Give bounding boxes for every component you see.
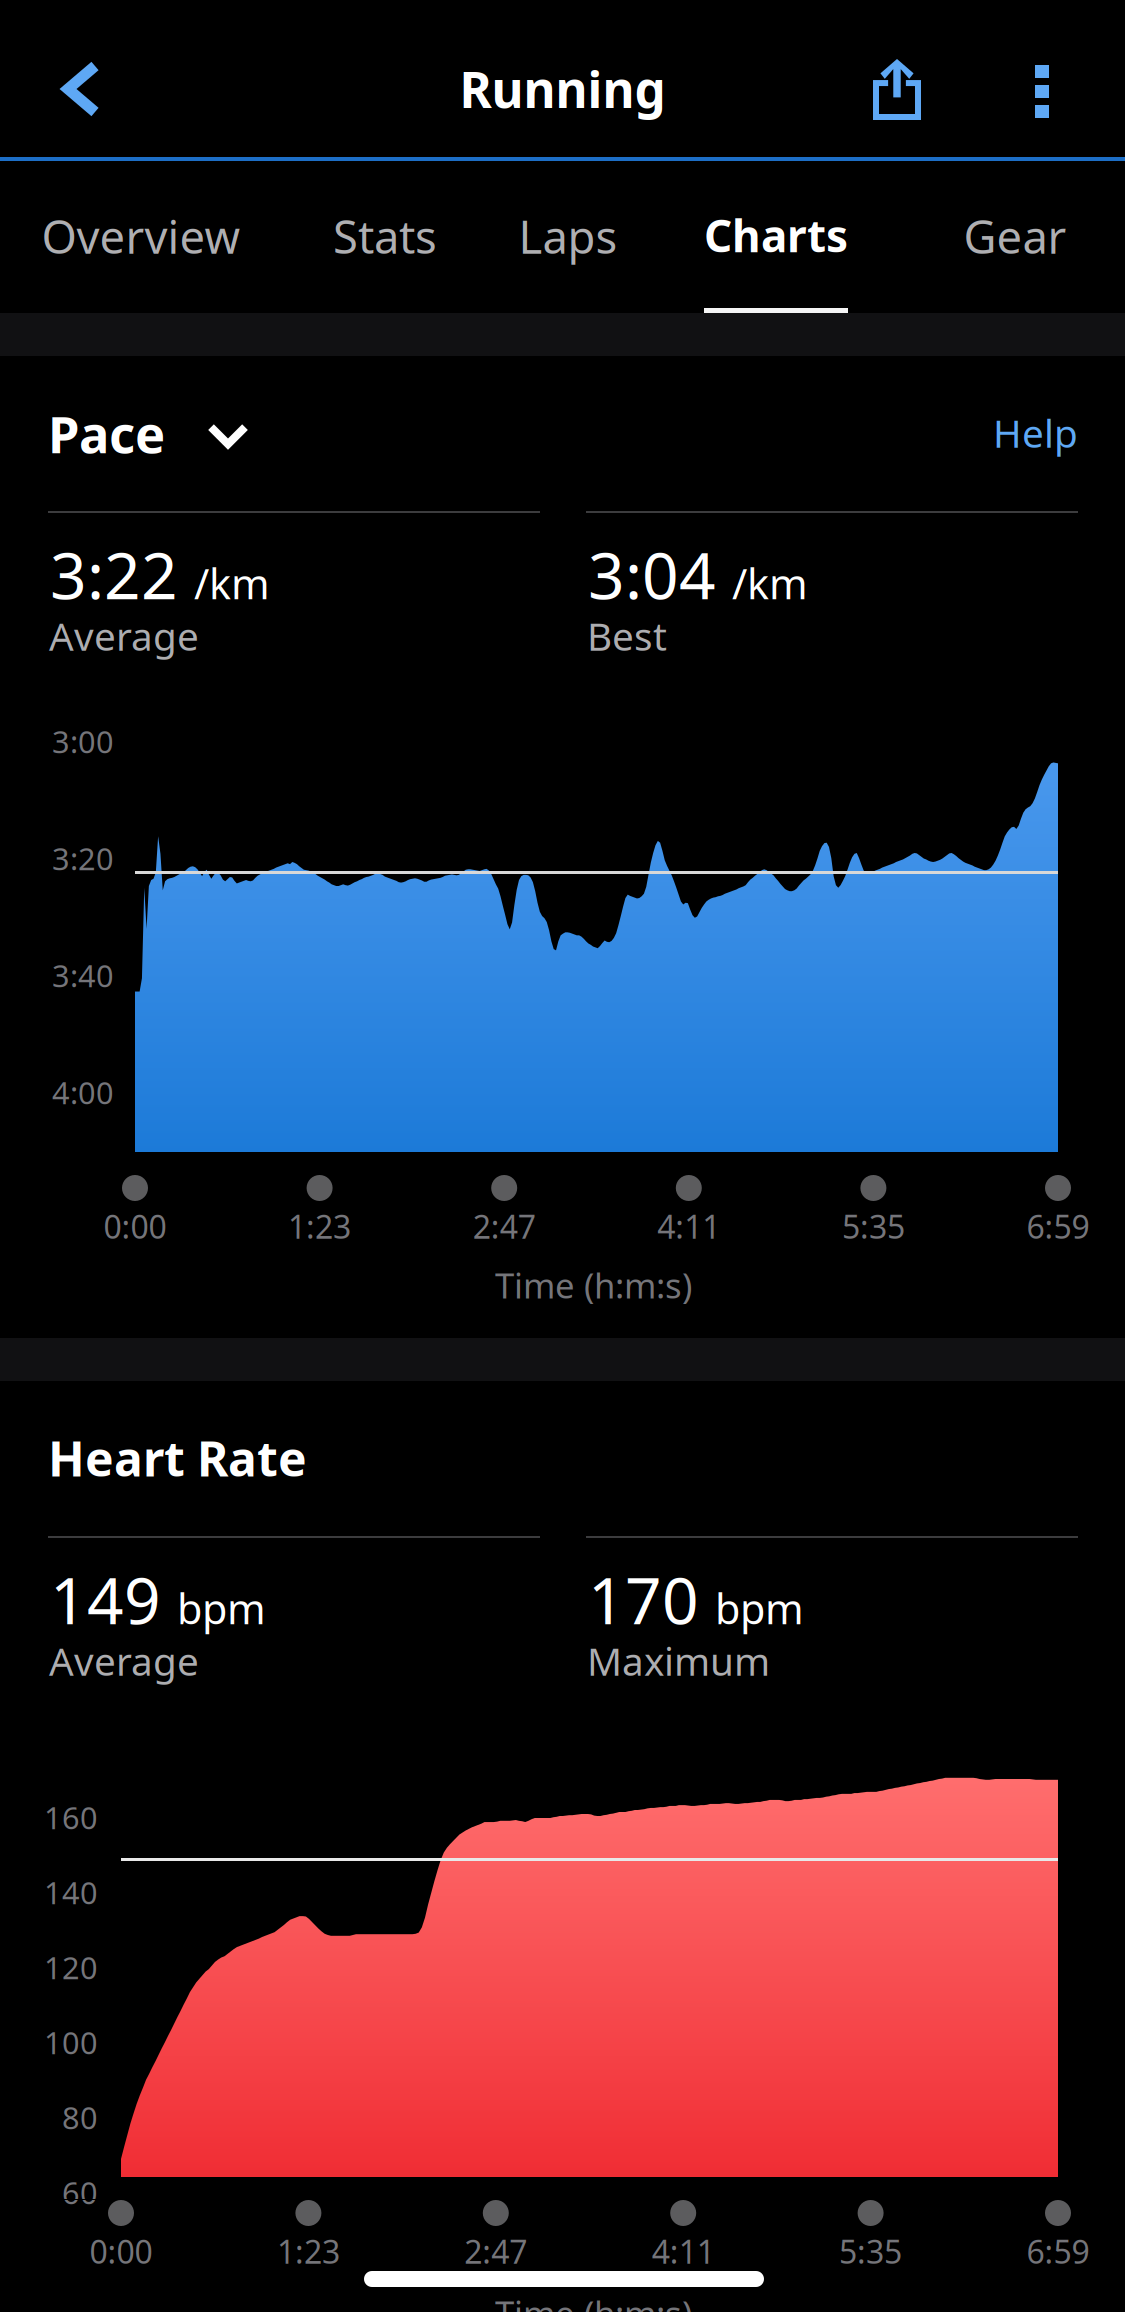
staticText: 60 xyxy=(62,2172,98,2213)
staticText: 0:00 xyxy=(103,1205,166,1247)
staticText: Time (h:m:s) xyxy=(495,1262,692,1308)
staticText: Best xyxy=(587,610,667,661)
staticText: 6:59 xyxy=(1026,2230,1089,2272)
staticText: 140 xyxy=(44,1872,98,1913)
staticText: bpm xyxy=(715,1581,804,1636)
staticText: 1:23 xyxy=(288,1205,351,1247)
staticText: 80 xyxy=(62,2097,98,2138)
button[interactable]: Back xyxy=(0,26,150,152)
staticText: 3:40 xyxy=(52,955,114,996)
button[interactable]: Laps xyxy=(453,160,683,315)
button[interactable]: Pace xyxy=(0,380,293,487)
staticText: Help xyxy=(993,407,1078,458)
staticText: /km xyxy=(194,556,270,611)
staticText: Pace xyxy=(48,400,165,467)
staticText: 4:11 xyxy=(652,2230,715,2272)
staticText: 3:04 xyxy=(588,532,716,617)
staticText: 1:23 xyxy=(277,2230,340,2272)
staticText: Laps xyxy=(518,206,617,266)
staticText: 2:47 xyxy=(464,2230,527,2272)
staticText: 149 xyxy=(50,1557,161,1642)
staticText: 6:59 xyxy=(1026,1205,1089,1247)
staticText: 3:00 xyxy=(52,721,114,762)
staticText: Charts xyxy=(704,206,848,264)
staticText: Maximum xyxy=(587,1635,770,1686)
staticText: Overview xyxy=(41,206,240,266)
staticText: 4:00 xyxy=(52,1072,114,1113)
button[interactable]: Stats xyxy=(270,160,500,315)
staticText: Average xyxy=(49,610,199,661)
button[interactable]: Overview xyxy=(26,160,256,315)
staticText: 3:22 xyxy=(50,532,178,617)
button[interactable]: More options xyxy=(985,23,1099,160)
staticText: 100 xyxy=(44,2022,98,2063)
staticText: Heart Rate xyxy=(48,1426,307,1490)
button[interactable]: Share xyxy=(825,17,969,162)
staticText: 2:47 xyxy=(473,1205,536,1247)
button[interactable]: Charts xyxy=(661,160,891,315)
staticText: 4:11 xyxy=(657,1205,720,1247)
staticText: 160 xyxy=(44,1797,98,1838)
button[interactable]: Gear xyxy=(900,160,1125,315)
staticText: Average xyxy=(49,1635,199,1686)
staticText: bpm xyxy=(177,1581,266,1636)
staticText: 3:20 xyxy=(52,838,114,879)
staticText: 5:35 xyxy=(839,2230,902,2272)
staticText: Gear xyxy=(963,206,1066,266)
staticText: Stats xyxy=(333,206,437,266)
button[interactable]: Help xyxy=(945,385,1125,480)
staticText: 120 xyxy=(44,1947,98,1988)
staticText: Time (h:m:s) xyxy=(495,2290,692,2312)
staticText: 170 xyxy=(588,1557,699,1642)
staticText: 5:35 xyxy=(842,1205,905,1247)
staticText: 0:00 xyxy=(89,2230,152,2272)
staticText: /km xyxy=(732,556,808,611)
staticText: Running xyxy=(459,56,665,121)
